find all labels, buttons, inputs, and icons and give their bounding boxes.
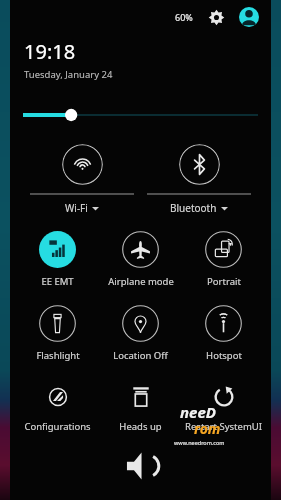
button[interactable]: Brightness [23, 108, 258, 122]
staticText: www.needrom.com [174, 439, 225, 446]
button[interactable]: Flashlight [16, 305, 99, 362]
staticText: Heads up [119, 420, 162, 433]
button[interactable]: Volume [124, 449, 158, 483]
staticText: rom [194, 419, 221, 438]
staticText: Portrait [207, 275, 241, 288]
button[interactable]: Settings [207, 8, 225, 26]
button[interactable]: Wi-Fi [62, 144, 103, 185]
button[interactable]: Configurations [16, 382, 99, 433]
staticText: EE EMT [41, 275, 74, 288]
staticText: Configurations [24, 420, 91, 433]
staticText: Restart SystemUI [185, 420, 262, 433]
staticText: 60% [175, 11, 193, 23]
staticText: 19:18 [24, 38, 76, 65]
button[interactable]: User profile [239, 7, 259, 27]
staticText: Hotspot [206, 349, 242, 362]
button[interactable]: Hotspot [182, 305, 265, 362]
staticText: Wi-Fi [65, 201, 88, 215]
button[interactable]: Airplane mode [99, 231, 182, 288]
staticText: Bluetooth [170, 201, 217, 215]
button[interactable]: Bluetooth [179, 144, 220, 185]
staticText: neeD [180, 402, 216, 422]
button[interactable]: Portrait [182, 231, 265, 288]
staticText: Tuesday, January 24 [24, 68, 113, 81]
button[interactable]: Location Off [99, 305, 182, 362]
button[interactable]: Heads up [99, 382, 182, 433]
staticText: Airplane mode [108, 275, 174, 288]
staticText: Location Off [113, 349, 168, 362]
button[interactable]: EE EMT [16, 231, 99, 288]
button[interactable]: Restart SystemUI [182, 382, 265, 433]
staticText: Flashlight [36, 349, 80, 362]
